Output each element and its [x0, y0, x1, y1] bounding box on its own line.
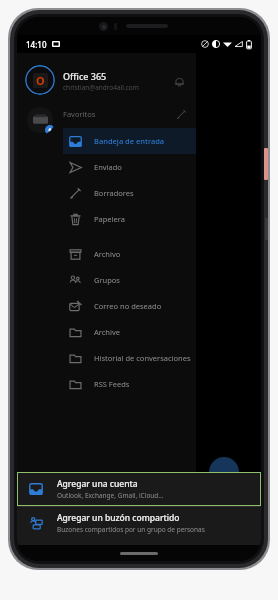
button[interactable]: Add mailbox	[25, 105, 55, 135]
staticText: Bandeja de entrada	[94, 136, 165, 146]
button[interactable]: Agregar un buzón compartido	[17, 507, 261, 539]
button[interactable]: Archivo	[63, 241, 196, 267]
button[interactable]: Enviado	[63, 154, 196, 180]
staticText: Archive	[94, 327, 120, 337]
staticText: Papelera	[94, 214, 125, 224]
button[interactable]: Edit favorites	[170, 103, 192, 125]
staticText: christian@andro4all.com	[63, 83, 139, 92]
button[interactable]: Favoritos	[63, 103, 196, 125]
button[interactable]: Grupos	[63, 267, 196, 293]
staticText: Office 365	[63, 70, 107, 82]
button[interactable]: Office 365 account	[25, 65, 55, 95]
staticText: Buzones compartidos por un grupo de pers…	[57, 525, 205, 534]
button[interactable]: Notifications	[166, 68, 192, 94]
staticText: Enviado	[94, 162, 122, 172]
staticText: 14:10	[26, 39, 47, 50]
button[interactable]: Archive	[63, 319, 196, 345]
button[interactable]: Borradores	[63, 180, 196, 206]
staticText: O	[36, 73, 45, 88]
button[interactable]: Historial de conversaciones	[63, 345, 196, 371]
staticText: Grupos	[94, 275, 120, 285]
staticText: Favoritos	[63, 109, 96, 119]
button[interactable]: Bandeja de entrada	[63, 128, 196, 154]
button[interactable]: RSS Feeds	[63, 371, 196, 397]
staticText: Outlook, Exchange, Gmail, iCloud...	[57, 491, 164, 500]
staticText: Agregar una cuenta	[57, 478, 138, 490]
staticText: Borradores	[94, 188, 134, 198]
staticText: Agregar un buzón compartido	[57, 512, 180, 524]
button[interactable]: Office 365	[63, 65, 196, 97]
button[interactable]: Papelera	[63, 206, 196, 232]
button[interactable]: Correo no deseado	[63, 293, 196, 319]
staticText: Historial de conversaciones	[94, 353, 191, 363]
staticText: Archivo	[94, 249, 121, 259]
staticText: RSS Feeds	[94, 379, 130, 389]
staticText: Correo no deseado	[94, 301, 162, 311]
button[interactable]: Agregar una cuenta	[17, 472, 261, 506]
